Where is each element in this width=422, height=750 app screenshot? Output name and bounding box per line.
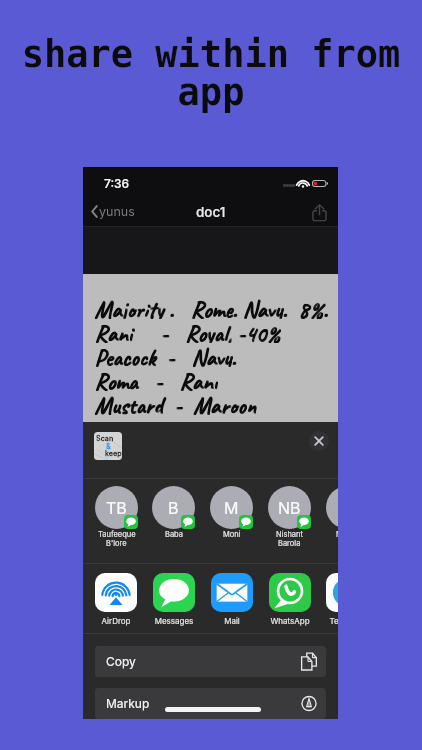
staticText: Copy — [106, 654, 136, 669]
button[interactable]: TB — [95, 486, 138, 540]
staticText: yunus — [99, 204, 135, 219]
button[interactable]: Share — [304, 196, 338, 227]
staticText: B'lore — [106, 539, 127, 548]
staticText: Roma - Rani — [95, 367, 218, 391]
staticText: Rani - Royal, -40% — [95, 319, 281, 343]
staticText: M — [224, 498, 239, 517]
button[interactable]: Copy — [95, 646, 326, 677]
button[interactable]: Close — [309, 431, 329, 451]
staticText: Peacock - Navy. — [94, 343, 236, 367]
staticText: Baba — [165, 530, 183, 539]
staticText: Mayur — [336, 530, 338, 539]
staticText: Peacock - Navy. — [95, 342, 237, 366]
staticText: & — [106, 442, 111, 451]
staticText: share within from app — [12, 33, 410, 114]
staticText: Rani - Royal, -40% — [95, 318, 281, 342]
staticText: Scan — [96, 434, 114, 443]
staticText: AirDrop — [95, 616, 137, 626]
staticText: Majority . Rome. Navy. 8%. — [95, 295, 329, 319]
staticText: Mustard - Maroon — [94, 390, 256, 414]
button[interactable]: Messages — [153, 573, 195, 627]
staticText: Mustard - Maroon — [95, 390, 257, 414]
staticText: Roma - Rani — [94, 367, 217, 391]
button[interactable]: Mail — [211, 573, 253, 627]
button[interactable]: M — [210, 486, 253, 540]
staticText: doc1 — [196, 204, 226, 220]
staticText: Rani - Royal, -40% — [94, 318, 280, 342]
staticText: Telegram — [326, 616, 338, 626]
staticText: Nishant — [276, 530, 303, 539]
button[interactable]: WhatsApp — [269, 573, 311, 627]
staticText: Barola — [278, 539, 301, 548]
button[interactable]: AirDrop — [95, 573, 137, 627]
button[interactable]: yunus — [87, 196, 143, 227]
button[interactable]: M — [326, 486, 338, 540]
staticText: Majority . Rome. Navy. 8%. — [95, 294, 329, 318]
staticText: Peacock - Navy. — [94, 342, 236, 366]
staticText: 7:36 — [104, 176, 130, 191]
staticText: keep — [105, 449, 122, 458]
staticText: Taufeeque — [98, 530, 136, 539]
staticText: Mustard - Maroon — [95, 391, 257, 415]
staticText: Mail — [211, 616, 253, 626]
button[interactable]: Markup — [95, 688, 326, 719]
staticText: Roma - Rani — [94, 366, 217, 390]
staticText: Majority . Rome. Navy. 8%. — [94, 294, 328, 318]
staticText: Rani - Royal, -40% — [94, 319, 280, 343]
staticText: B — [168, 498, 179, 517]
staticText: Majority . Rome. Navy. 8%. — [94, 295, 328, 319]
staticText: Moni — [223, 530, 241, 539]
staticText: NB — [278, 498, 301, 517]
staticText: Peacock - Navy. — [95, 343, 237, 367]
button[interactable]: B — [152, 486, 195, 540]
staticText: Roma - Rani — [95, 366, 218, 390]
button[interactable]: NB — [268, 486, 311, 540]
staticText: Messages — [153, 616, 195, 626]
button[interactable]: Telegram — [326, 573, 338, 627]
staticText: Markup — [106, 696, 150, 711]
staticText: Mustard - Maroon — [94, 391, 256, 415]
staticText: WhatsApp — [269, 616, 311, 626]
staticText: TB — [106, 498, 127, 517]
